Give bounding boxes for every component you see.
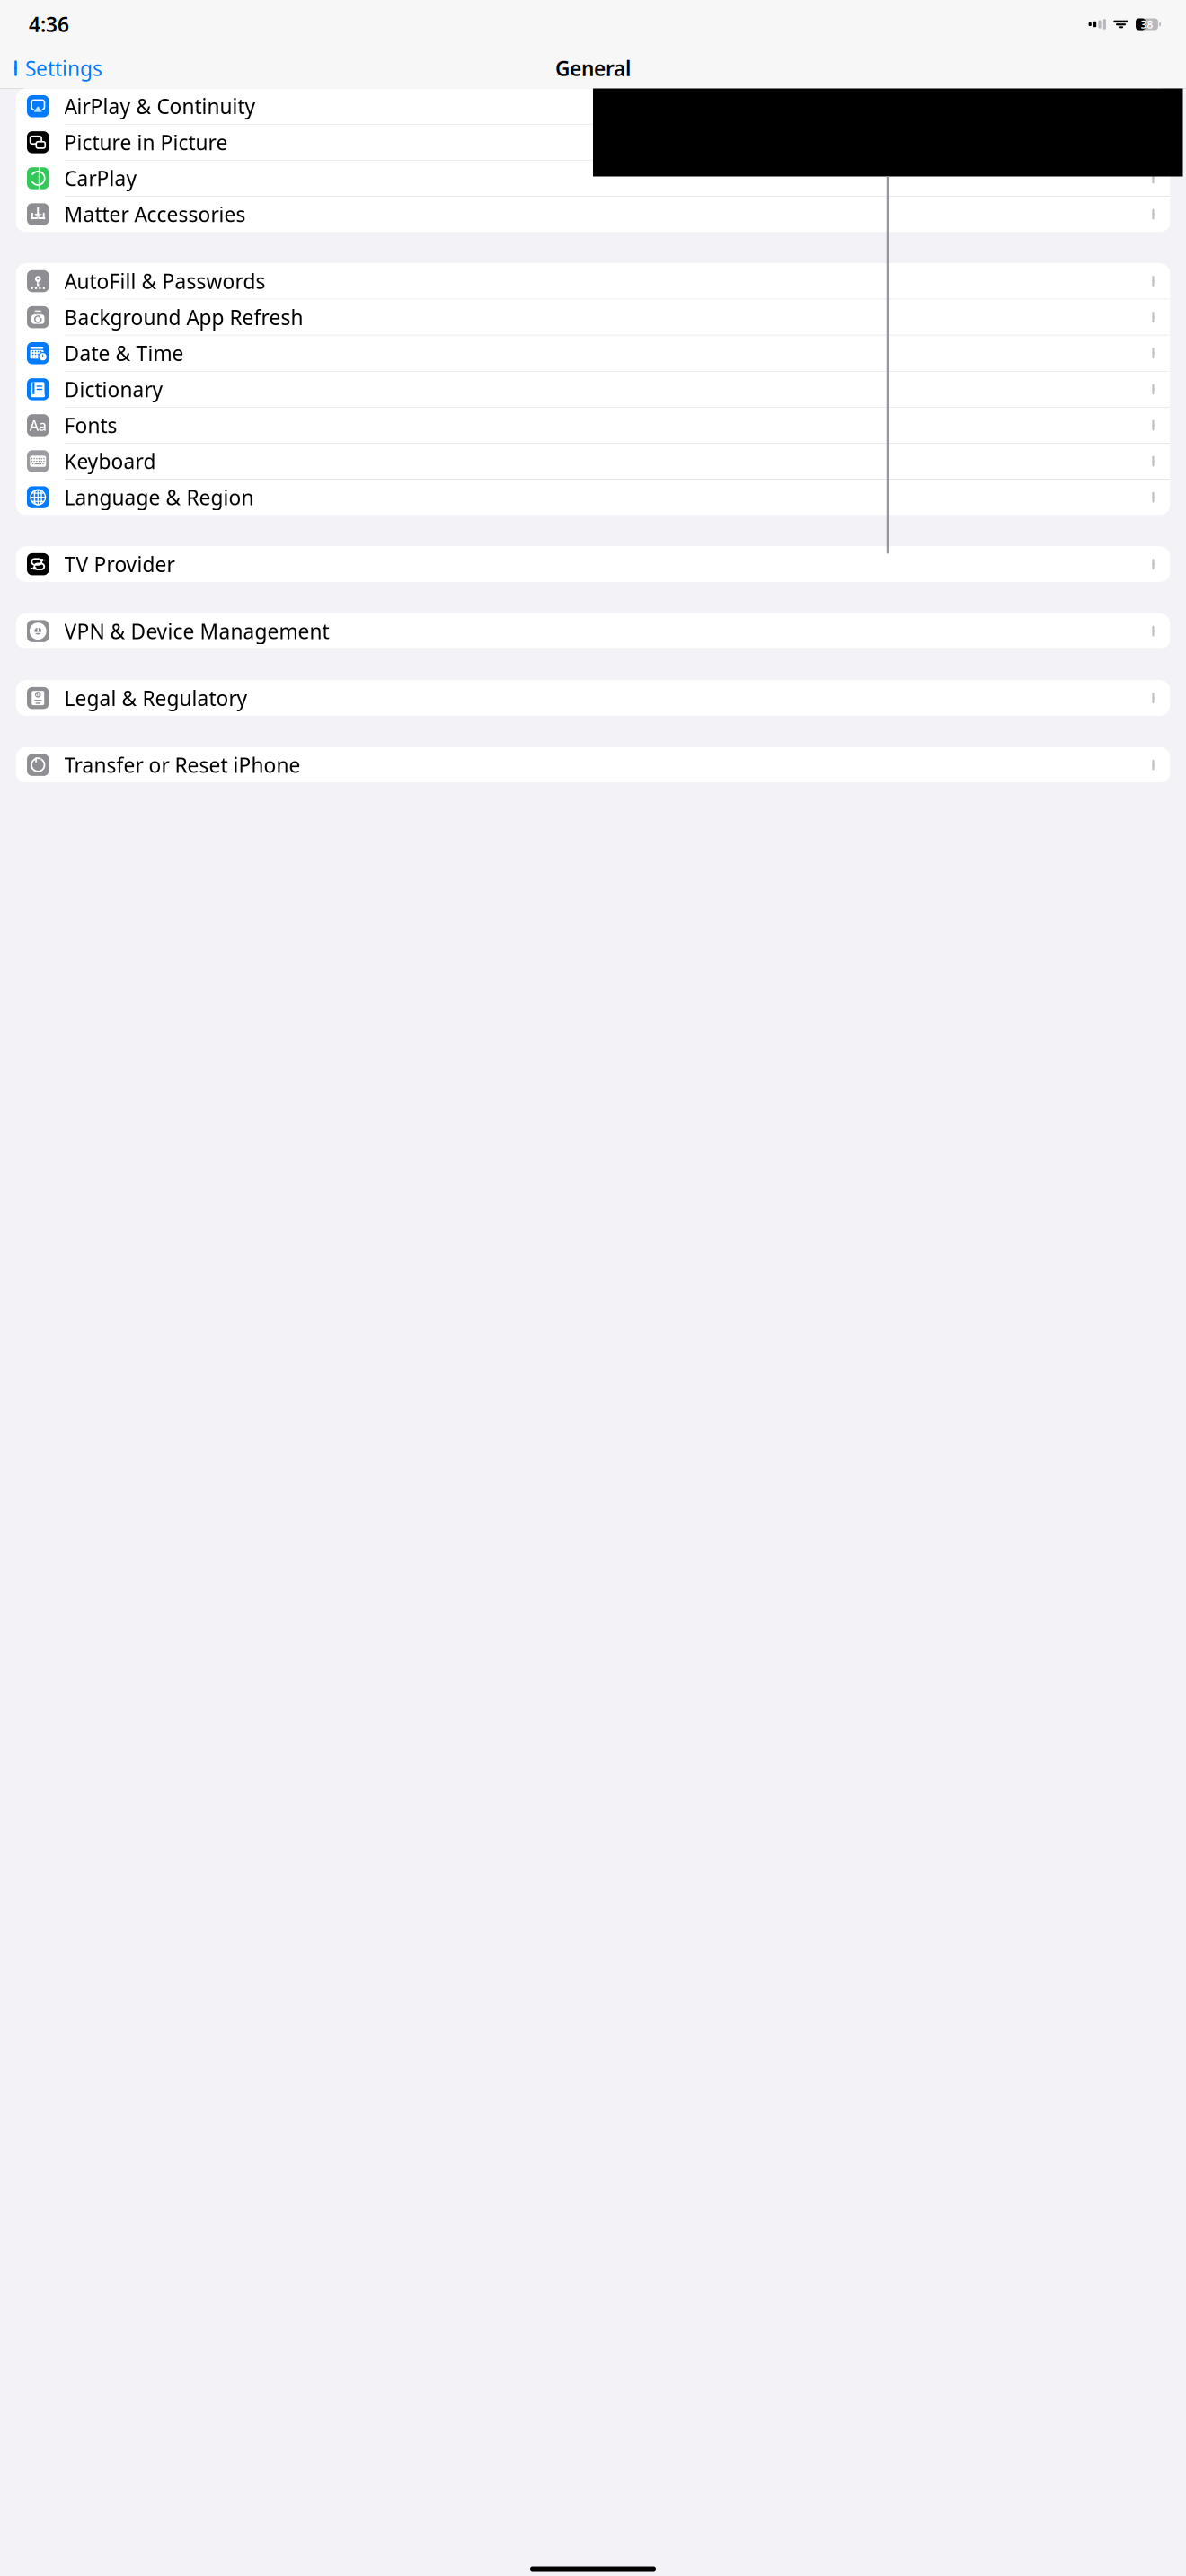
button[interactable]: Legal & Regulatory bbox=[16, 680, 1170, 716]
staticText: AirPlay & Continuity bbox=[64, 93, 256, 120]
staticText: Date & Time bbox=[64, 340, 184, 367]
staticText: Transfer or Reset iPhone bbox=[64, 751, 301, 778]
staticText: Matter Accessories bbox=[64, 201, 246, 228]
staticText: TV Provider bbox=[64, 551, 175, 578]
staticText: General bbox=[555, 55, 631, 82]
button[interactable]: Language & Region bbox=[16, 480, 1170, 515]
button[interactable]: Date & Time bbox=[16, 335, 1170, 371]
button[interactable]: TV Provider bbox=[16, 546, 1170, 582]
staticText: Picture in Picture bbox=[64, 129, 228, 156]
button[interactable]: Dictionary bbox=[16, 371, 1170, 408]
button[interactable]: AirPlay & Continuity bbox=[16, 88, 1170, 124]
staticText: Fonts bbox=[64, 412, 117, 439]
staticText: Aa bbox=[29, 416, 47, 435]
staticText: Dictionary bbox=[64, 376, 163, 403]
staticText: CarPlay bbox=[64, 165, 137, 192]
button[interactable]: VPN & Device Management bbox=[16, 613, 1170, 649]
staticText: Keyboard bbox=[64, 448, 156, 475]
button[interactable]: AutoFill & Passwords bbox=[16, 263, 1170, 299]
staticText: VPN & Device Management bbox=[64, 618, 329, 645]
staticText: Language & Region bbox=[64, 484, 254, 511]
button[interactable]: Settings bbox=[4, 49, 102, 87]
staticText: Background App Refresh bbox=[64, 304, 303, 331]
staticText: AutoFill & Passwords bbox=[64, 268, 266, 295]
staticText: 38 bbox=[1141, 17, 1153, 31]
button[interactable]: Aa bbox=[16, 408, 1170, 444]
button[interactable]: Background App Refresh bbox=[16, 299, 1170, 335]
staticText: 4:36 bbox=[29, 11, 69, 38]
button[interactable]: CarPlay bbox=[16, 161, 1170, 197]
staticText: Legal & Regulatory bbox=[64, 685, 248, 712]
button[interactable]: Transfer or Reset iPhone bbox=[16, 747, 1170, 783]
button[interactable]: Matter Accessories bbox=[16, 197, 1170, 232]
button[interactable]: Picture in Picture bbox=[16, 124, 1170, 161]
staticText: Settings bbox=[25, 55, 102, 82]
button[interactable]: Keyboard bbox=[16, 444, 1170, 480]
